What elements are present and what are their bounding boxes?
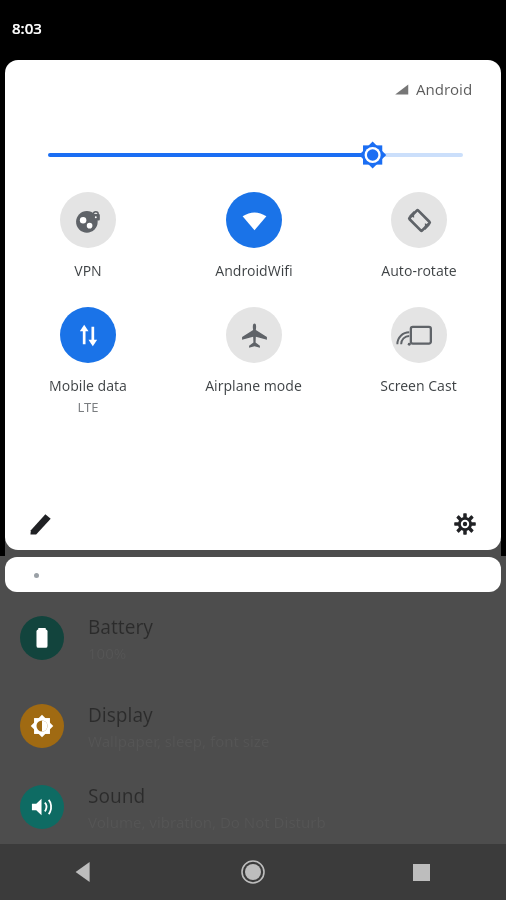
button[interactable]: Edit tiles — [19, 502, 63, 546]
staticText: Battery — [88, 614, 153, 640]
button[interactable]: Display — [0, 682, 506, 770]
staticText: VPN — [74, 261, 102, 280]
staticText: Screen Cast — [380, 376, 457, 395]
button[interactable]: Sound — [0, 770, 506, 844]
button[interactable]: Back — [0, 844, 168, 900]
staticText: Mobile data — [49, 376, 127, 395]
staticText: Android — [416, 79, 473, 99]
button[interactable]: Screen Cast — [336, 307, 501, 395]
button[interactable]: Settings — [443, 502, 487, 546]
button[interactable]: Home — [168, 844, 337, 900]
staticText: Sound — [88, 783, 146, 809]
staticText: Auto-rotate — [381, 261, 457, 280]
staticText: Display — [88, 702, 153, 728]
staticText: 8:03 — [12, 18, 42, 38]
button[interactable]: Recent apps — [337, 844, 506, 900]
button[interactable]: Mobile data — [5, 307, 171, 416]
button[interactable]: Auto-rotate — [336, 192, 501, 280]
button[interactable]: AndroidWifi — [171, 192, 336, 280]
staticText: Airplane mode — [205, 376, 302, 395]
button[interactable]: VPN — [5, 192, 171, 280]
staticText: AndroidWifi — [215, 261, 293, 280]
staticText: LTE — [77, 398, 99, 416]
button[interactable]: Battery — [0, 594, 506, 682]
button[interactable] — [5, 557, 501, 592]
button[interactable]: Airplane mode — [171, 307, 336, 395]
